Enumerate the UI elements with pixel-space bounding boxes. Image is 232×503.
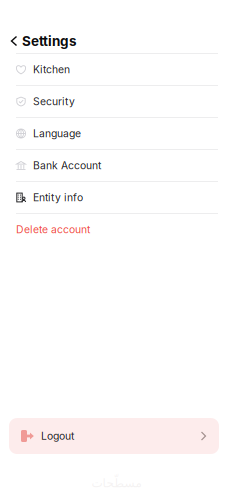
button[interactable]: Security (0, 86, 232, 117)
button[interactable]: Entity info (0, 182, 232, 213)
button[interactable]: Delete account (0, 214, 232, 245)
button[interactable]: Kitchen (0, 54, 232, 85)
staticText: مسطّحات (91, 476, 141, 490)
staticText: Logout (41, 430, 74, 442)
staticText: Settings (22, 33, 77, 49)
button[interactable]: Logout (9, 418, 219, 454)
button[interactable]: Back (9, 30, 19, 52)
button[interactable]: Bank Account (0, 150, 232, 181)
staticText: Security (33, 95, 75, 108)
staticText: Kitchen (33, 63, 70, 76)
staticText: Language (33, 127, 81, 140)
staticText: Delete account (16, 223, 90, 236)
staticText: Bank Account (33, 159, 101, 172)
staticText: Entity info (33, 191, 83, 204)
button[interactable]: Language (0, 118, 232, 149)
